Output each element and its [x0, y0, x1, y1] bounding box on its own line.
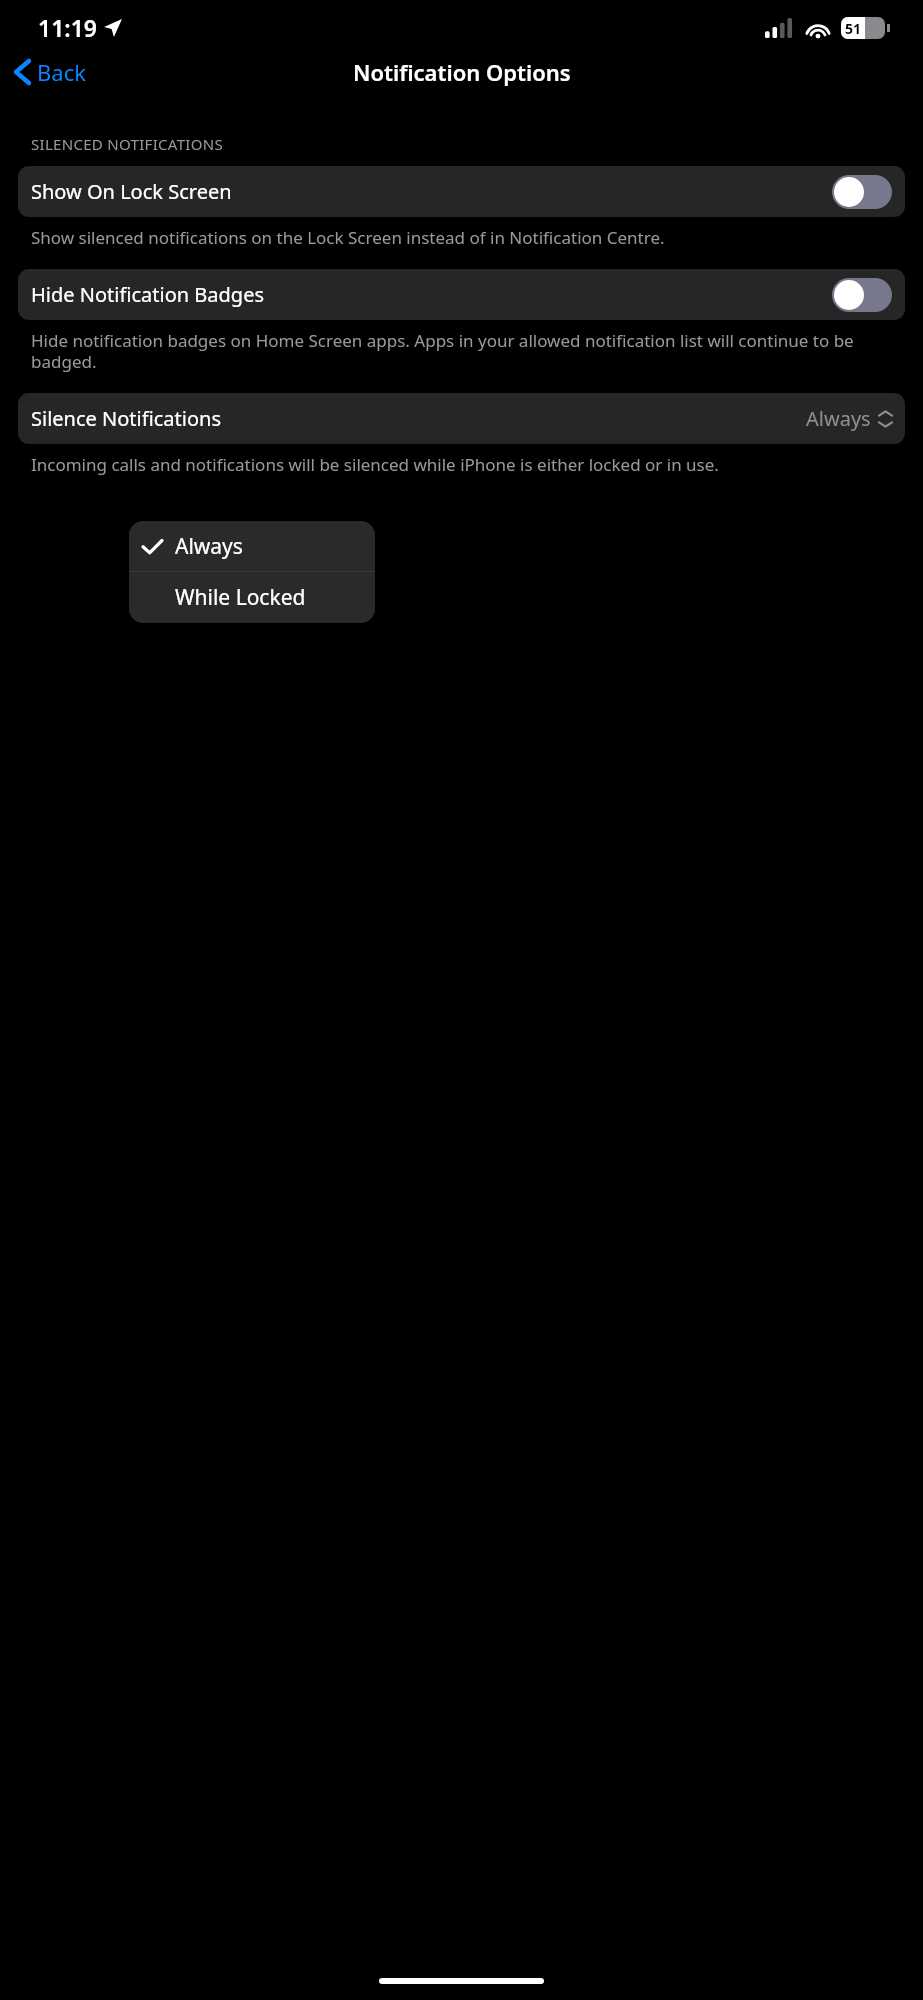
- button[interactable]: Back: [10, 53, 92, 91]
- staticText: Notification Options: [353, 57, 571, 87]
- staticText: Show silenced notifications on the Lock …: [31, 226, 665, 249]
- staticText: Hide Notification Badges: [31, 281, 265, 308]
- staticText: Back: [37, 57, 86, 87]
- staticText: 51: [845, 19, 862, 38]
- staticText: Always: [806, 405, 871, 432]
- staticText: Always: [175, 532, 243, 561]
- staticText: Silence Notifications: [31, 405, 221, 432]
- button[interactable]: While Locked: [129, 572, 375, 623]
- staticText: Hide notification badges on Home Screen …: [31, 329, 895, 373]
- button[interactable]: Toggle: [832, 175, 892, 209]
- button[interactable]: Silence Notifications: [18, 393, 905, 444]
- staticText: Show On Lock Screen: [31, 178, 232, 205]
- button[interactable]: Always: [129, 521, 375, 571]
- button[interactable]: Show On Lock Screen: [18, 166, 905, 217]
- button[interactable]: Hide Notification Badges: [18, 269, 905, 320]
- staticText: 11:19: [38, 12, 97, 43]
- staticText: While Locked: [175, 583, 306, 612]
- staticText: SILENCED NOTIFICATIONS: [31, 134, 223, 154]
- button[interactable]: Toggle: [832, 278, 892, 312]
- staticText: Incoming calls and notifications will be…: [31, 453, 719, 476]
